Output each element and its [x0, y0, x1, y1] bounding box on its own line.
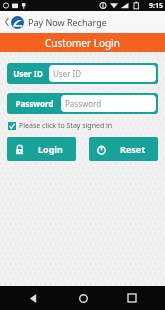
staticText: Password	[15, 98, 54, 109]
staticText: Customer Login	[45, 36, 120, 50]
staticText: Password	[65, 98, 102, 109]
staticText: 9:15	[149, 1, 163, 11]
button[interactable]: Please click to Stay signed in	[8, 121, 113, 131]
staticText: User ID	[13, 68, 43, 79]
button[interactable]: Recent apps	[115, 286, 149, 310]
staticText: Login	[38, 143, 63, 155]
button[interactable]: Password	[7, 93, 158, 114]
staticText: User ID	[53, 68, 82, 79]
staticText: Reset	[120, 143, 146, 155]
button[interactable]: Back	[16, 286, 50, 310]
staticText: Pay Now Recharge	[28, 16, 107, 28]
button[interactable]: Reset	[89, 137, 158, 161]
button[interactable]: Login	[7, 137, 76, 161]
button[interactable]: Home	[66, 286, 100, 310]
button[interactable]: User ID	[7, 63, 158, 84]
button[interactable]: Back	[2, 12, 11, 32]
staticText: Please click to Stay signed in	[19, 121, 113, 131]
